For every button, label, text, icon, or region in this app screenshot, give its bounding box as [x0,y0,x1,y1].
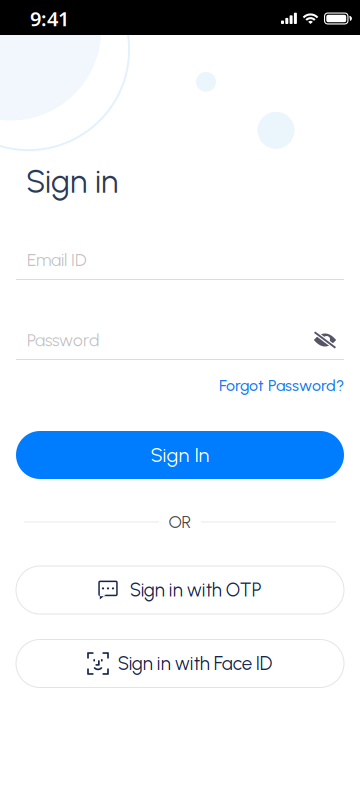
staticText: Email ID [27,250,87,270]
button[interactable]: Sign in with OTP [16,566,344,614]
staticText: OR [168,512,191,532]
staticText: Sign in [26,162,118,201]
button[interactable]: Sign in with Face ID [16,639,344,687]
staticText: Sign in with OTP [130,579,262,601]
button[interactable]: Show password [306,323,344,357]
staticText: Forgot Password? [219,376,344,395]
staticText: Sign in with Face ID [118,652,273,675]
staticText: Password [27,330,99,351]
staticText: 9:41 [30,5,69,32]
button[interactable]: Forgot Password? [16,374,344,396]
staticText: Sign In [150,443,209,467]
button[interactable]: Sign In [16,431,344,479]
